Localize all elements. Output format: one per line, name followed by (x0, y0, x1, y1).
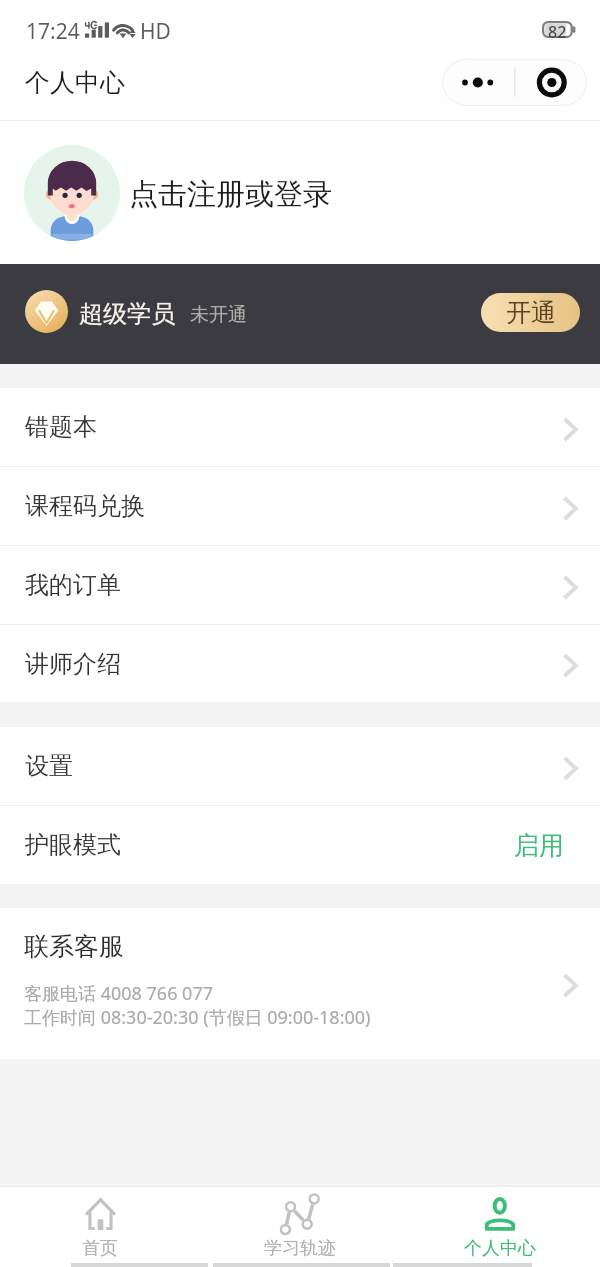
staticText: 课程码兑换 (25, 491, 145, 521)
staticText: 82 (548, 21, 567, 43)
button[interactable]: 课程码兑换 (0, 467, 600, 545)
staticText: 联系客服 (24, 931, 124, 962)
button[interactable]: 护眼模式 (0, 806, 600, 884)
button[interactable]: 个人中心 (400, 1187, 600, 1263)
staticText: 超级学员 (79, 299, 175, 329)
staticText: 启用 (514, 830, 564, 861)
button[interactable]: 学习轨迹 (200, 1187, 400, 1263)
staticText: 点击注册或登录 (129, 176, 332, 213)
staticText: 错题本 (25, 412, 97, 442)
button[interactable]: 设置 (0, 727, 600, 805)
staticText: HD (140, 17, 171, 46)
staticText: 设置 (25, 751, 73, 781)
button[interactable]: 我的订单 (0, 546, 600, 624)
staticText: 我的订单 (25, 570, 121, 600)
staticText: 客服电话 4008 766 077 工作时间 08:30-20:30 (节假日 … (24, 981, 371, 1030)
staticText: 未开通 (190, 303, 247, 327)
button[interactable]: 错题本 (0, 388, 600, 466)
staticText: 17:24 (26, 17, 80, 46)
button[interactable]: 点击注册或登录 (0, 121, 600, 264)
staticText: 护眼模式 (25, 830, 121, 860)
button[interactable]: 讲师介绍 (0, 625, 600, 702)
staticText: 个人中心 (464, 1237, 536, 1260)
button[interactable]: 首页 (0, 1187, 200, 1263)
staticText: 首页 (82, 1237, 118, 1260)
staticText: 讲师介绍 (25, 649, 121, 679)
button[interactable]: 开通 (481, 293, 580, 332)
staticText: 个人中心 (25, 67, 125, 98)
button[interactable]: 联系客服 (0, 908, 600, 1059)
button[interactable]: 菜单 (442, 59, 587, 106)
staticText: 学习轨迹 (264, 1237, 336, 1260)
staticText: 开通 (506, 297, 556, 328)
